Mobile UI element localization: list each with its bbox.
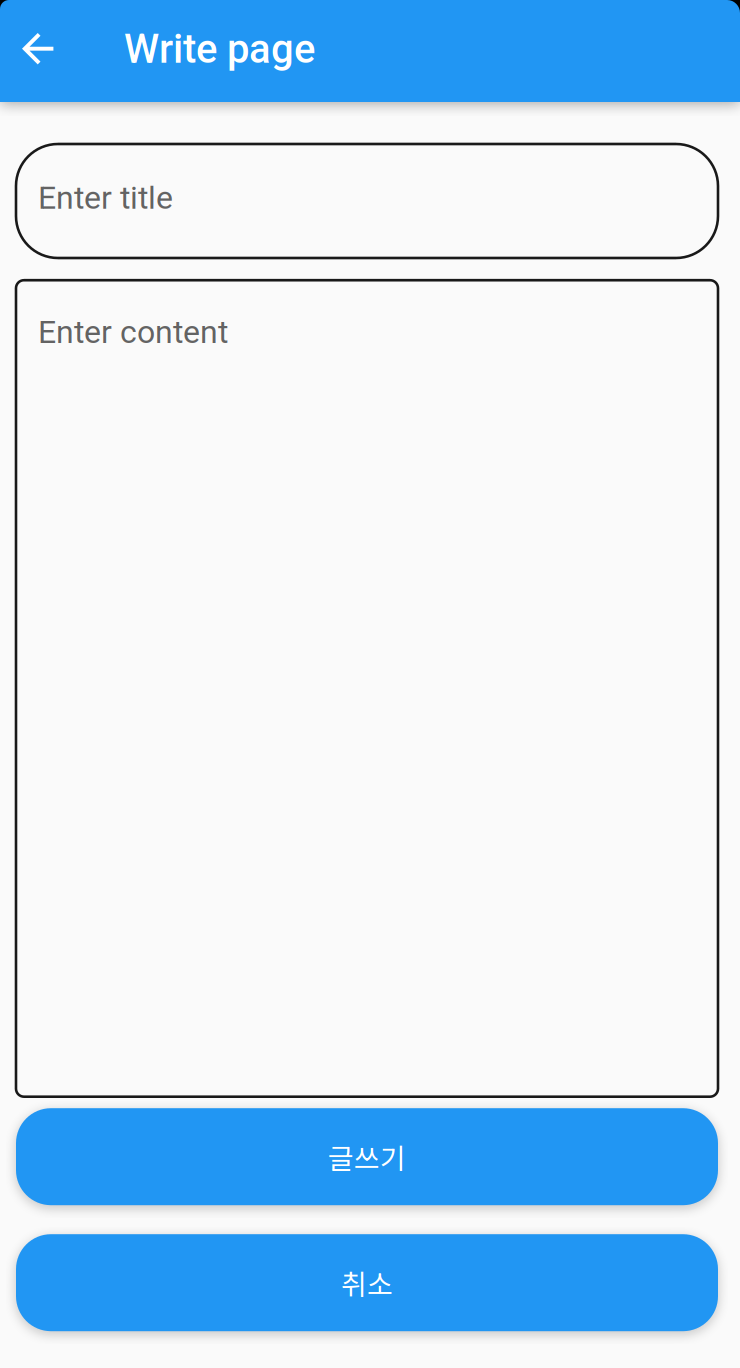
staticText: Enter content — [38, 313, 228, 351]
staticText: 취소 — [341, 1262, 393, 1303]
staticText: Write page — [124, 26, 315, 72]
button[interactable]: Enter content — [16, 280, 718, 1097]
button[interactable]: 글쓰기 — [16, 1108, 718, 1205]
button[interactable]: 취소 — [16, 1234, 718, 1331]
staticText: 글쓰기 — [328, 1136, 406, 1177]
button[interactable]: Back — [0, 0, 126, 102]
button[interactable]: Enter title — [16, 144, 718, 258]
staticText: Enter title — [38, 179, 173, 216]
